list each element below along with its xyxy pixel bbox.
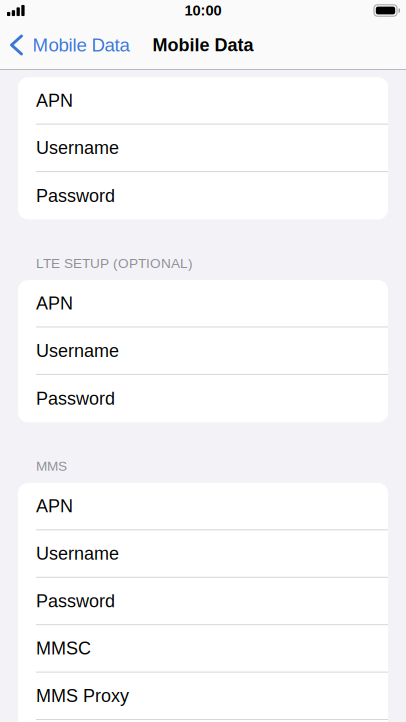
staticText: Username [36,341,119,361]
button[interactable]: MMSC [18,625,388,673]
staticText: Password [36,186,115,206]
button[interactable]: Password [18,172,388,219]
staticText: APN [36,293,73,313]
button[interactable]: Username [18,125,388,172]
staticText: MMS [36,458,67,474]
staticText: Mobile Data [32,35,129,55]
button[interactable]: Password [18,578,388,625]
staticText: APN [36,496,73,516]
staticText: MMS Proxy [36,686,129,706]
staticText: 10:00 [184,2,221,19]
staticText: Password [36,388,115,409]
staticText: MMSC [36,638,91,658]
staticText: Username [36,138,119,158]
button[interactable]: Username [18,327,388,375]
staticText: LTE SETUP (OPTIONAL) [36,256,193,271]
staticText: APN [36,90,73,110]
staticText: Username [36,543,119,564]
staticText: Mobile Data [152,35,253,55]
button[interactable]: APN [18,77,388,125]
button[interactable]: Username [18,530,388,578]
staticText: Password [36,591,115,611]
button[interactable]: APN [18,280,388,327]
button[interactable]: Mobile Data [0,21,139,69]
button[interactable]: Password [18,375,388,422]
button[interactable]: APN [18,483,388,530]
button[interactable]: MMS Proxy [18,673,388,720]
